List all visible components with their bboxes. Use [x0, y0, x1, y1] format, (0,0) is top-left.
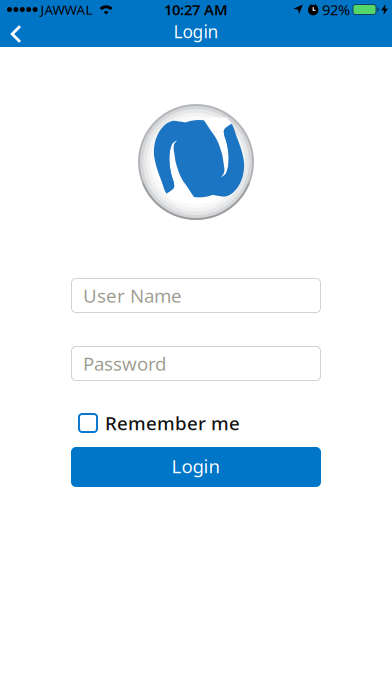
staticText: JAWWAL — [41, 1, 93, 18]
button[interactable]: Login — [71, 447, 321, 487]
staticText: Login — [171, 454, 220, 478]
staticText: User Name — [83, 283, 182, 308]
staticText: 10:27 AM — [164, 0, 228, 19]
staticText: Login — [173, 20, 218, 43]
staticText: Remember me — [105, 411, 240, 435]
textField[interactable]: User Name — [83, 283, 321, 308]
staticText: Password — [83, 351, 166, 376]
staticText: 92% — [322, 0, 350, 19]
secureTextField[interactable]: Password — [83, 351, 321, 376]
button[interactable]: Back — [0, 19, 22, 47]
button[interactable]: Remember me — [79, 411, 240, 435]
